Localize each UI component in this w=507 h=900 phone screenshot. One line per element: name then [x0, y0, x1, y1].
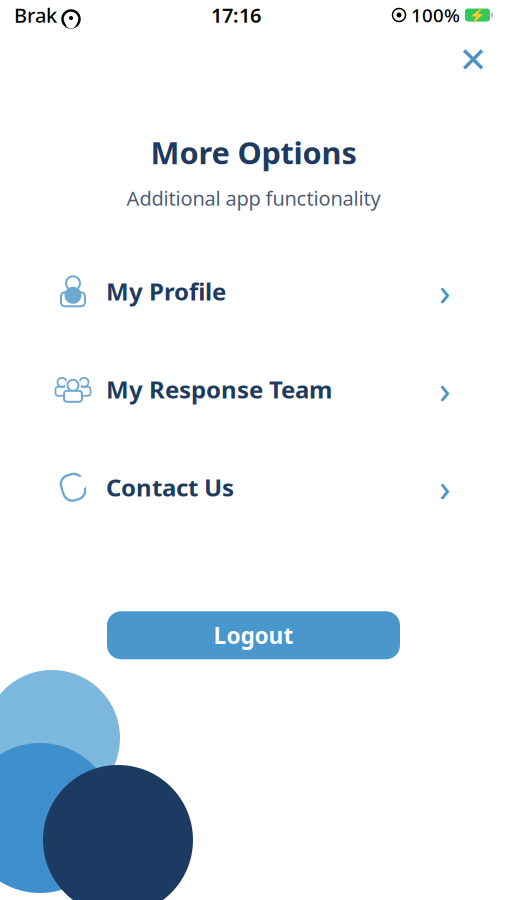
staticText: Logout	[213, 620, 293, 650]
staticText: ›	[439, 266, 451, 316]
button[interactable]: Close	[451, 38, 495, 82]
staticText: ›	[439, 462, 451, 512]
staticText: My Profile	[106, 275, 226, 307]
staticText: More Options	[150, 132, 356, 173]
staticText: Brak	[14, 2, 57, 28]
button[interactable]: My Profile	[0, 267, 507, 315]
staticText: My Response Team	[106, 373, 332, 405]
staticText: ›	[439, 364, 451, 414]
staticText: 17:16	[211, 2, 261, 28]
button[interactable]: Logout	[107, 611, 400, 659]
staticText: 100%	[411, 3, 460, 27]
staticText: Additional app functionality	[126, 185, 380, 211]
staticText: ✕	[458, 40, 487, 80]
staticText: ⚡	[469, 7, 486, 23]
staticText: Contact Us	[106, 471, 234, 503]
button[interactable]: My Response Team	[0, 365, 507, 413]
button[interactable]: Contact Us	[0, 463, 507, 511]
